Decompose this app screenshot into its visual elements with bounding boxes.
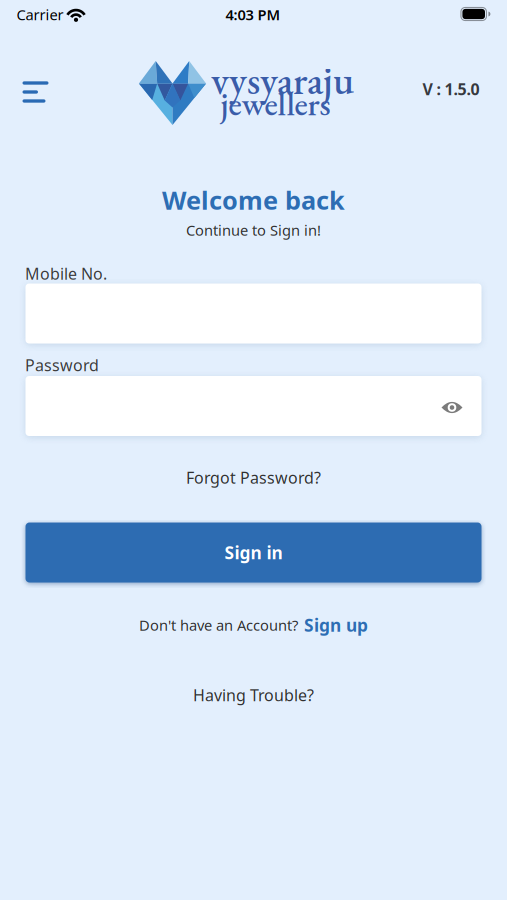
staticText: Sign in (224, 541, 282, 564)
staticText: 4:03 PM (225, 5, 280, 24)
staticText: Welcome back (162, 183, 345, 217)
staticText: Forgot Password? (186, 467, 321, 488)
button[interactable]: Sign in (25, 522, 481, 582)
button[interactable]: Mobile No. (25, 283, 481, 343)
staticText: Password (25, 354, 99, 376)
button[interactable]: Password (25, 376, 481, 436)
button[interactable]: Sign up (304, 613, 368, 636)
staticText: Sign up (304, 613, 368, 636)
staticText: Carrier (16, 5, 63, 24)
staticText: Don't have an Account? (139, 615, 298, 635)
button[interactable]: Menu (14, 72, 58, 112)
staticText: Continue to Sign in! (186, 220, 321, 240)
staticText: V : 1.5.0 (422, 78, 479, 100)
staticText: Having Trouble? (193, 684, 314, 706)
staticText: jewellers (220, 82, 330, 125)
button[interactable]: Having Trouble? (185, 678, 322, 712)
staticText: Mobile No. (25, 263, 107, 284)
button[interactable]: Show password (432, 387, 472, 427)
staticText: vysyaraju (211, 54, 354, 106)
button[interactable]: Forgot Password? (178, 461, 329, 494)
